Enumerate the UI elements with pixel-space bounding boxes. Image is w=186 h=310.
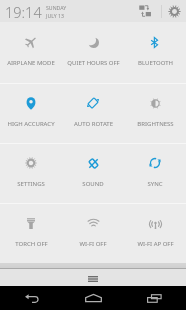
- button[interactable]: Home: [74, 286, 112, 310]
- button[interactable]: AUTO ROTATE: [62, 83, 124, 143]
- staticText: AIRPLANE MODE: [7, 59, 55, 67]
- staticText: HIGH ACCURACY: [7, 120, 55, 128]
- staticText: QUIET HOURS OFF: [67, 59, 120, 67]
- button[interactable]: BRIGHTNESS: [124, 83, 186, 143]
- button[interactable]: SYNC: [124, 143, 186, 203]
- button[interactable]: HIGH ACCURACY: [0, 83, 62, 143]
- button[interactable]: SOUND: [62, 143, 124, 203]
- button[interactable]: Settings: [162, 0, 186, 22]
- button[interactable]: QUIET HOURS OFF: [62, 22, 124, 83]
- button[interactable]: Recent apps: [135, 286, 173, 310]
- button[interactable]: WI-FI OFF: [62, 203, 124, 263]
- staticText: BRIGHTNESS: [137, 120, 174, 128]
- staticText: WI-FI OFF: [79, 240, 107, 248]
- button[interactable]: AIRPLANE MODE: [0, 22, 62, 83]
- button[interactable]: Back: [13, 286, 51, 310]
- staticText: SOUND: [82, 180, 104, 188]
- button[interactable]: BLUETOOTH: [124, 22, 186, 83]
- button[interactable]: WI-FI AP OFF: [124, 203, 186, 263]
- staticText: SUNDAY: [46, 4, 67, 11]
- staticText: AUTO ROTATE: [74, 120, 113, 128]
- staticText: WI-FI AP OFF: [137, 240, 174, 248]
- staticText: SETTINGS: [17, 180, 45, 188]
- staticText: JULY 13: [46, 12, 64, 19]
- staticText: SYNC: [147, 180, 163, 188]
- staticText: TORCH OFF: [15, 240, 48, 248]
- button[interactable]: TORCH OFF: [0, 203, 62, 263]
- button[interactable]: Expand quick settings: [0, 269, 186, 286]
- button[interactable]: SETTINGS: [0, 143, 62, 203]
- staticText: 19:14: [5, 2, 42, 22]
- button[interactable]: Data transfer: [133, 0, 161, 22]
- staticText: BLUETOOTH: [138, 59, 173, 67]
